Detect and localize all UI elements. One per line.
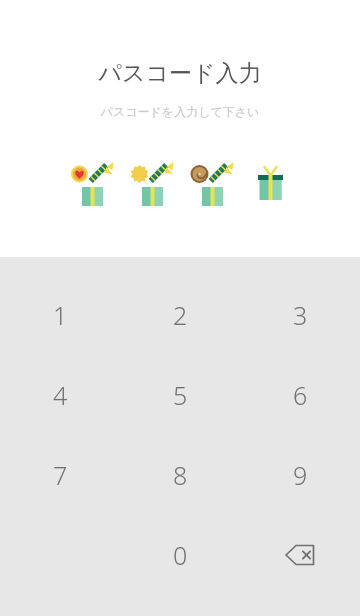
staticText: パスコード入力 bbox=[0, 59, 360, 88]
staticText: 2 bbox=[173, 298, 188, 332]
button[interactable]: Backspace bbox=[240, 515, 360, 595]
button[interactable]: 2 bbox=[120, 275, 240, 355]
button[interactable]: 1 bbox=[0, 275, 120, 355]
staticText: 0 bbox=[173, 538, 188, 572]
staticText: 6 bbox=[293, 378, 308, 412]
staticText: 4 bbox=[53, 378, 68, 412]
button[interactable]: 5 bbox=[120, 355, 240, 435]
staticText: 3 bbox=[293, 298, 308, 332]
staticText: パスコードを入力して下さい bbox=[0, 104, 360, 119]
staticText: 8 bbox=[173, 458, 188, 492]
button[interactable]: 4 bbox=[0, 355, 120, 435]
button[interactable]: 7 bbox=[0, 435, 120, 515]
staticText: 5 bbox=[173, 378, 188, 412]
button[interactable]: 3 bbox=[240, 275, 360, 355]
staticText: 1 bbox=[53, 298, 68, 332]
button[interactable]: 6 bbox=[240, 355, 360, 435]
button[interactable]: 9 bbox=[240, 435, 360, 515]
button[interactable]: 8 bbox=[120, 435, 240, 515]
button[interactable]: 0 bbox=[120, 515, 240, 595]
staticText: 9 bbox=[293, 458, 308, 492]
staticText: 7 bbox=[53, 458, 68, 492]
